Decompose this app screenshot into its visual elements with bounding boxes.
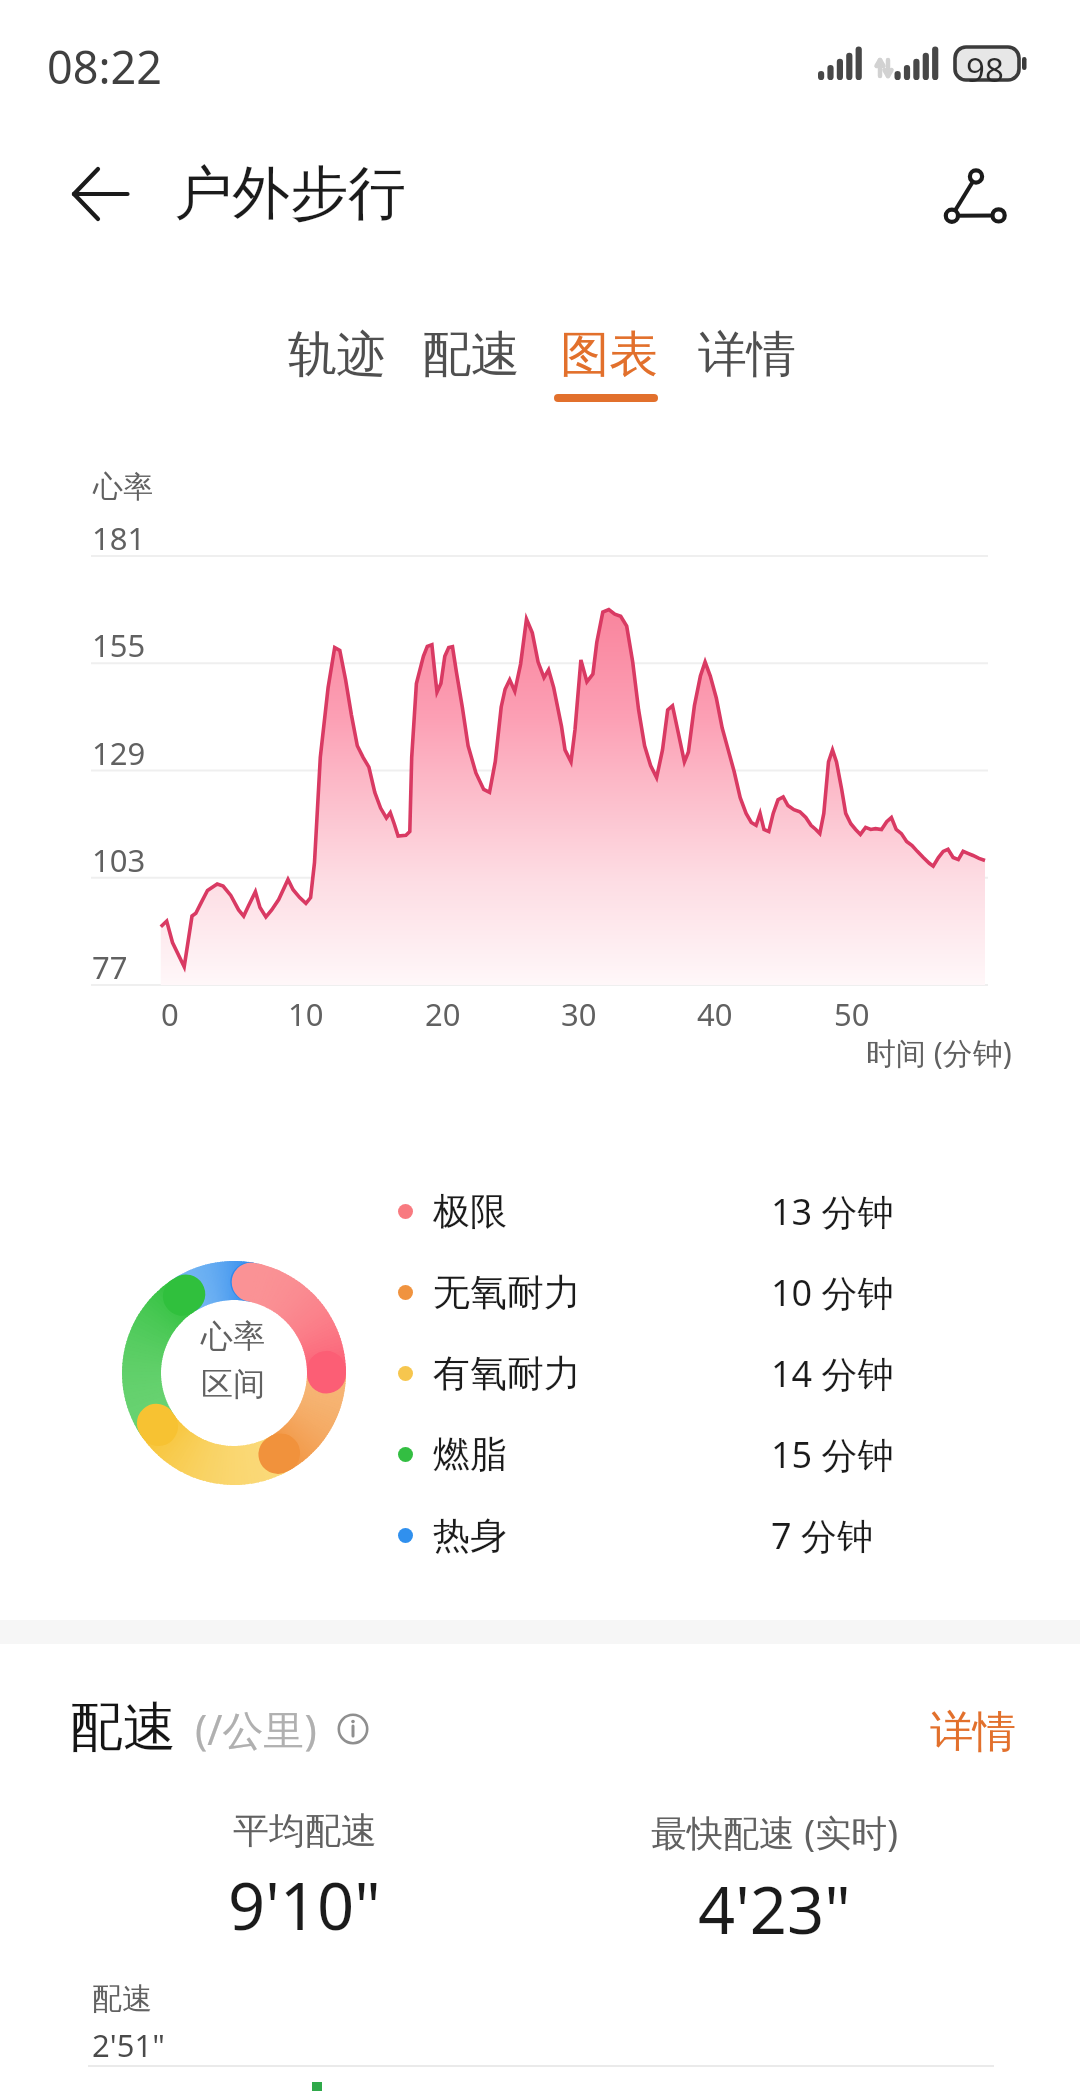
staticText: 181: [92, 517, 146, 559]
staticText: 配速: [70, 1694, 176, 1761]
staticText: 最快配速 (实时): [651, 1808, 898, 1857]
staticText: 时间 (分钟): [866, 1032, 1012, 1073]
staticText: 无氧耐力: [433, 1269, 581, 1316]
button[interactable]: 无氧耐力: [398, 1252, 951, 1332]
staticText: 30: [561, 993, 597, 1035]
staticText: 详情: [698, 324, 796, 386]
button[interactable]: Share: [930, 150, 1022, 242]
staticText: 14 分钟: [771, 1349, 894, 1398]
staticText: 图表: [560, 324, 658, 386]
staticText: 10: [288, 993, 324, 1035]
staticText: 燃脂: [433, 1431, 507, 1478]
staticText: 0: [161, 993, 179, 1035]
staticText: 98: [966, 47, 1004, 92]
staticText: 7 分钟: [771, 1511, 873, 1560]
staticText: 热身: [433, 1512, 507, 1559]
staticText: 有氧耐力: [433, 1350, 581, 1397]
staticText: 155: [92, 624, 146, 666]
staticText: 10 分钟: [771, 1268, 894, 1317]
staticText: 轨迹: [288, 324, 386, 386]
staticText: (/公里): [195, 1701, 317, 1757]
staticText: 40: [697, 993, 733, 1035]
button[interactable]: 燃脂: [398, 1414, 951, 1494]
staticText: 77: [92, 946, 128, 988]
staticText: 13 分钟: [771, 1187, 894, 1236]
staticText: 平均配速: [233, 1808, 377, 1853]
button[interactable]: 详情: [930, 1705, 1016, 1759]
button[interactable]: Back: [58, 152, 142, 236]
button[interactable]: 轨迹: [278, 324, 394, 412]
staticText: 50: [834, 993, 870, 1035]
staticText: 配速: [422, 324, 520, 386]
button[interactable]: 配速: [412, 324, 528, 412]
staticText: 配速: [92, 1980, 152, 2018]
staticText: 心率: [93, 468, 153, 506]
staticText: 心率: [201, 1316, 265, 1356]
staticText: 9'10": [228, 1861, 381, 1950]
button[interactable]: Info: [337, 1713, 369, 1745]
button[interactable]: 图表: [550, 324, 666, 412]
staticText: 08:22: [47, 36, 163, 97]
staticText: 129: [92, 732, 146, 774]
staticText: 2'51": [92, 2024, 165, 2066]
button[interactable]: 热身: [398, 1495, 951, 1575]
staticText: 103: [92, 839, 146, 881]
staticText: 4'23": [698, 1865, 851, 1954]
staticText: 极限: [433, 1188, 507, 1235]
button[interactable]: 极限: [398, 1171, 951, 1251]
button[interactable]: 有氧耐力: [398, 1333, 951, 1413]
button[interactable]: 详情: [688, 324, 804, 412]
staticText: 区间: [201, 1364, 265, 1404]
staticText: 15 分钟: [771, 1430, 894, 1479]
staticText: 20: [425, 993, 461, 1035]
staticText: 户外步行: [174, 157, 406, 230]
